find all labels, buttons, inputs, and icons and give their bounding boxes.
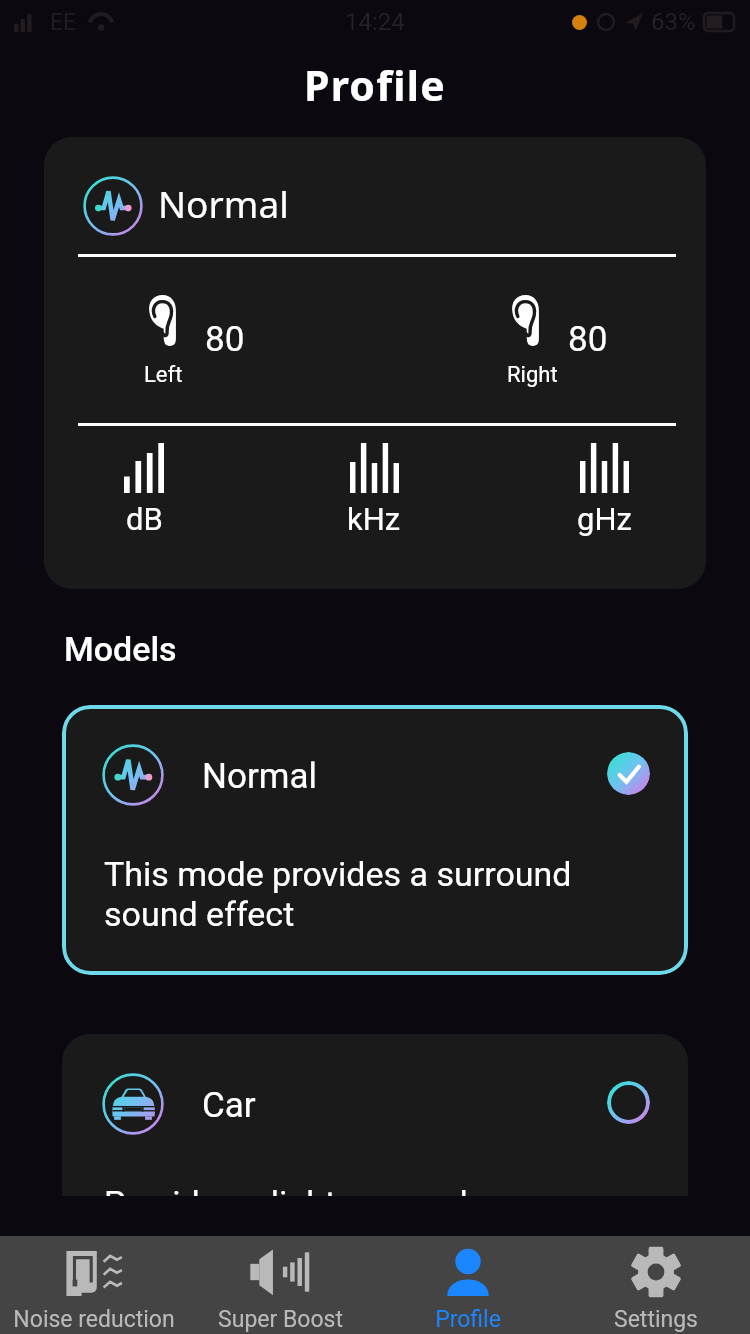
button[interactable]: Settings [562, 1236, 750, 1334]
button[interactable]: Select Car [607, 1081, 650, 1124]
staticText: 14:24 [345, 8, 405, 36]
button[interactable]: Selected [607, 752, 650, 795]
staticText: Profile [435, 1306, 501, 1333]
button[interactable]: Profile [374, 1236, 562, 1334]
staticText: Super Boost [218, 1306, 343, 1333]
button[interactable]: Normal [44, 137, 706, 589]
staticText: kHz [347, 501, 401, 537]
staticText: Models [64, 629, 177, 669]
button[interactable]: Noise reduction [0, 1236, 187, 1334]
staticText: 63% [651, 8, 696, 36]
staticText: This mode provides a surround sound effe… [104, 854, 572, 934]
staticText: Normal [202, 756, 318, 797]
button[interactable]: Normal [62, 705, 688, 975]
staticText: dB [126, 501, 163, 537]
button[interactable]: Super Boost [187, 1236, 374, 1334]
staticText: Profile [304, 57, 446, 113]
staticText: Noise reduction [13, 1306, 175, 1333]
staticText: Provides a lighter sound, you can hear t… [104, 1183, 601, 1196]
staticText: Normal [158, 178, 289, 228]
staticText: Left [144, 362, 183, 388]
staticText: Settings [614, 1306, 698, 1333]
staticText: Car [202, 1085, 256, 1126]
button[interactable]: Car [62, 1034, 688, 1196]
staticText: 80 [568, 319, 608, 360]
staticText: gHz [577, 501, 632, 537]
staticText: Right [507, 362, 558, 388]
staticText: 80 [205, 319, 245, 360]
staticText: EE [50, 9, 77, 36]
